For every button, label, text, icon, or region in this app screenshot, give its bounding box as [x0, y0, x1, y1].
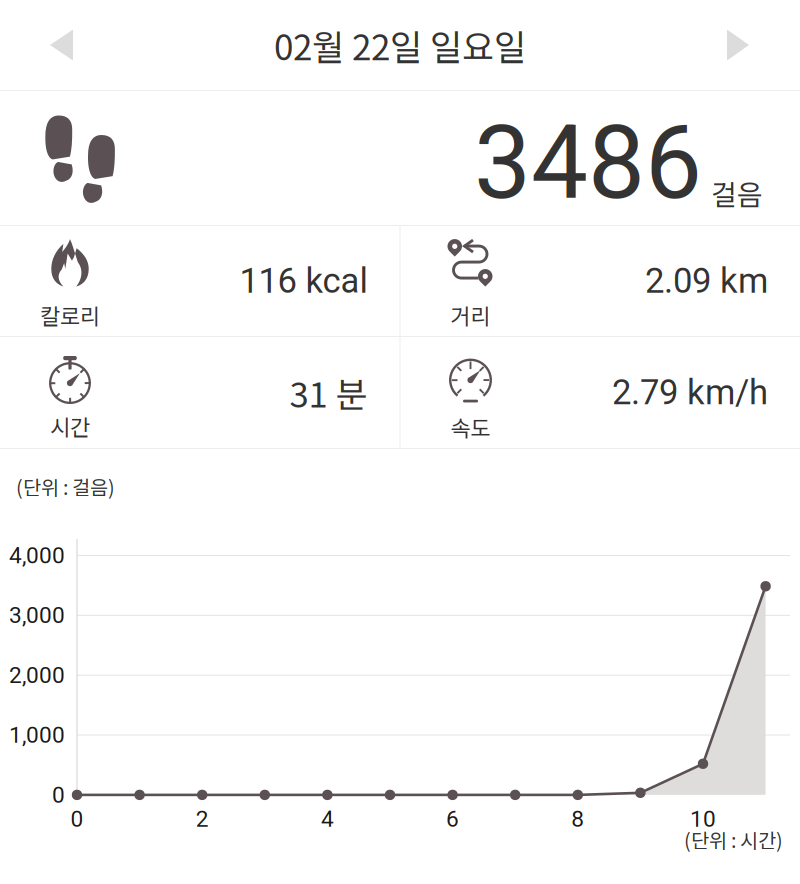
staticText: 4: [321, 806, 334, 832]
staticText: 02월 22일 일요일: [274, 20, 526, 70]
staticText: (단위 : 걸음): [16, 472, 115, 501]
button[interactable]: Next day: [697, 0, 800, 90]
staticText: 1,000: [9, 722, 65, 748]
staticText: 2: [196, 806, 209, 832]
staticText: 4,000: [9, 542, 65, 569]
staticText: 걸음: [711, 173, 763, 213]
staticText: 2.79 km/h: [612, 372, 768, 413]
staticText: 3486: [474, 104, 702, 222]
button[interactable]: 칼로리: [0, 226, 399, 336]
button[interactable]: 거리: [400, 226, 800, 336]
staticText: 31 분: [289, 367, 367, 418]
button[interactable]: 시간: [0, 337, 399, 448]
staticText: 8: [571, 806, 584, 832]
staticText: 10: [690, 806, 716, 832]
staticText: 거리: [450, 299, 490, 331]
staticText: 2.09 km: [645, 261, 768, 301]
staticText: 시간: [50, 410, 90, 442]
staticText: 0: [52, 782, 65, 808]
staticText: (단위 : 시간): [684, 825, 783, 854]
button[interactable]: 속도: [400, 337, 800, 448]
staticText: 칼로리: [40, 299, 100, 331]
staticText: 116 kcal: [239, 261, 367, 301]
staticText: 속도: [450, 411, 490, 443]
staticText: 6: [446, 806, 459, 832]
staticText: 2,000: [9, 662, 65, 688]
staticText: 3,000: [9, 602, 65, 629]
staticText: 0: [70, 806, 83, 832]
button[interactable]: Previous day: [0, 0, 103, 90]
